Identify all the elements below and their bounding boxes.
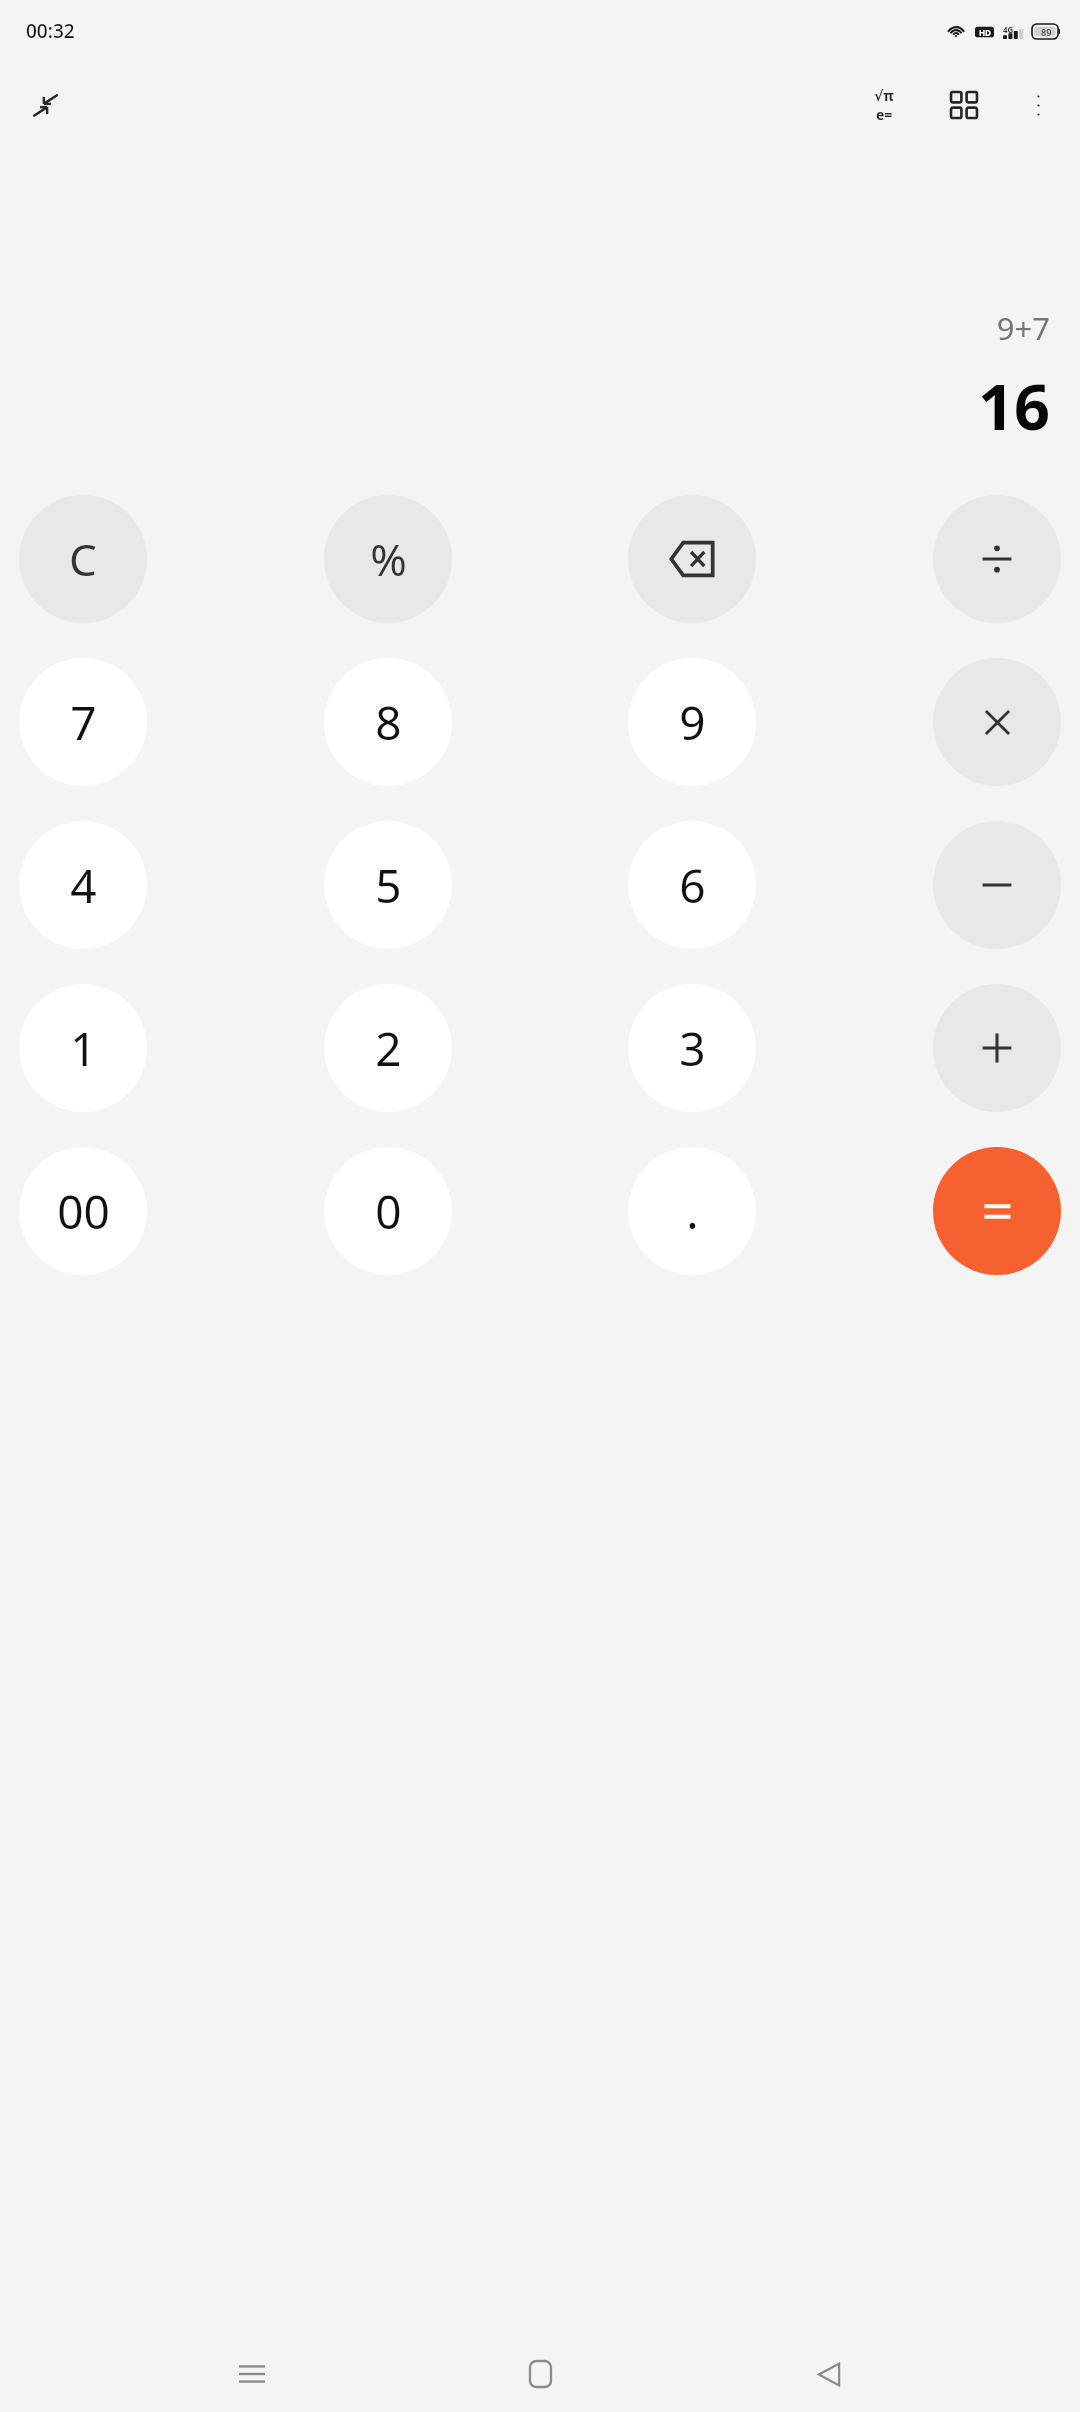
button[interactable]: Recent apps — [215, 2337, 289, 2411]
staticText: 2 — [375, 1017, 402, 1080]
button[interactable]: 5 — [324, 821, 452, 949]
button[interactable]: 2 — [324, 984, 452, 1112]
button[interactable]: Scientific — [856, 77, 912, 133]
button[interactable]: Backspace — [628, 495, 756, 623]
button[interactable]: Minus — [933, 821, 1061, 949]
button[interactable]: Divide — [933, 495, 1061, 623]
button[interactable]: 3 — [628, 984, 756, 1112]
staticText: % — [370, 529, 407, 589]
staticText: 5 — [375, 854, 402, 917]
staticText: 6 — [679, 854, 706, 917]
button[interactable]: C — [19, 495, 147, 623]
button[interactable]: Multiply — [933, 658, 1061, 786]
button[interactable]: 4 — [19, 821, 147, 949]
button[interactable]: Collapse — [18, 78, 72, 132]
staticText: 8 — [375, 691, 402, 754]
staticText: 89 — [1041, 26, 1052, 38]
button[interactable]: 0 — [324, 1147, 452, 1275]
staticText: 00:32 — [26, 18, 75, 44]
button[interactable]: 7 — [19, 658, 147, 786]
staticText: √π — [874, 86, 894, 105]
staticText: 3 — [679, 1017, 706, 1080]
button[interactable]: More options — [1010, 77, 1066, 133]
staticText: HD — [979, 27, 991, 38]
button[interactable]: . — [628, 1147, 756, 1275]
staticText: e= — [876, 105, 893, 124]
button[interactable]: Home — [503, 2337, 577, 2411]
staticText: 4 — [70, 854, 97, 917]
button[interactable]: Unit converter — [936, 77, 992, 133]
staticText: 16 — [977, 363, 1050, 449]
button[interactable]: Equals — [933, 1147, 1061, 1275]
button[interactable]: Plus — [933, 984, 1061, 1112]
staticText: 00 — [57, 1180, 110, 1243]
button[interactable]: 6 — [628, 821, 756, 949]
button[interactable]: 1 — [19, 984, 147, 1112]
staticText: . — [686, 1180, 699, 1243]
button[interactable]: 8 — [324, 658, 452, 786]
staticText: 4G — [1003, 24, 1014, 35]
staticText: 9+7 — [996, 307, 1050, 349]
staticText: C — [69, 529, 97, 589]
staticText: 0 — [375, 1180, 402, 1243]
staticText: 1 — [70, 1017, 97, 1080]
staticText: 9 — [679, 691, 706, 754]
button[interactable]: % — [324, 495, 452, 623]
staticText: 7 — [70, 691, 97, 754]
button[interactable]: 9 — [628, 658, 756, 786]
button[interactable]: Back — [792, 2337, 866, 2411]
button[interactable]: 00 — [19, 1147, 147, 1275]
